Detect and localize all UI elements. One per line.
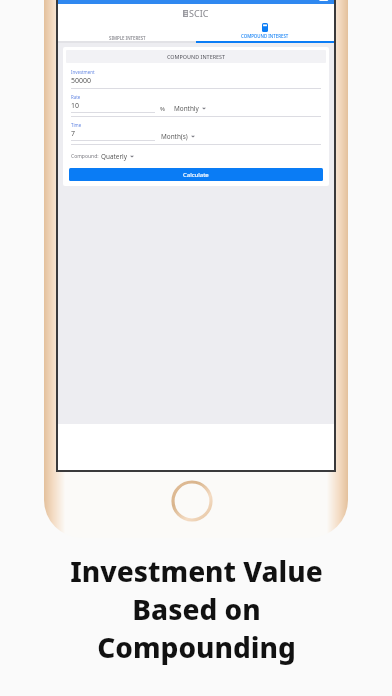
staticText: Compound:	[71, 153, 99, 160]
staticText: SIMPLE INTEREST	[109, 35, 146, 41]
staticText: 50000	[71, 76, 92, 86]
button[interactable]: Home	[172, 481, 212, 521]
button[interactable]: SIMPLE INTEREST	[58, 21, 196, 41]
staticText: 10	[71, 101, 80, 111]
staticText: Based on	[132, 590, 261, 628]
staticText: Monthly	[174, 104, 199, 113]
staticText: COMPOUND INTEREST	[241, 33, 289, 39]
staticText: COMPOUND INTEREST	[167, 53, 226, 60]
staticText: SCIC	[189, 7, 209, 19]
button[interactable]: Compound:	[71, 152, 134, 161]
staticText: Time	[71, 122, 82, 128]
button[interactable]: Calculate	[69, 168, 323, 181]
staticText: Rate	[71, 94, 81, 100]
staticText: Investment	[71, 69, 95, 75]
staticText: Quaterly	[101, 152, 127, 161]
button[interactable]: COMPOUND INTEREST	[196, 21, 334, 41]
staticText: 7	[71, 129, 76, 139]
button[interactable]: Month(s)	[161, 132, 195, 141]
staticText: Calculate	[183, 171, 209, 179]
staticText: Investment Value	[70, 552, 323, 590]
staticText: Month(s)	[161, 132, 188, 141]
staticText: Compounding	[97, 628, 296, 666]
staticText: %	[160, 105, 165, 113]
button[interactable]: Monthly	[174, 104, 206, 113]
